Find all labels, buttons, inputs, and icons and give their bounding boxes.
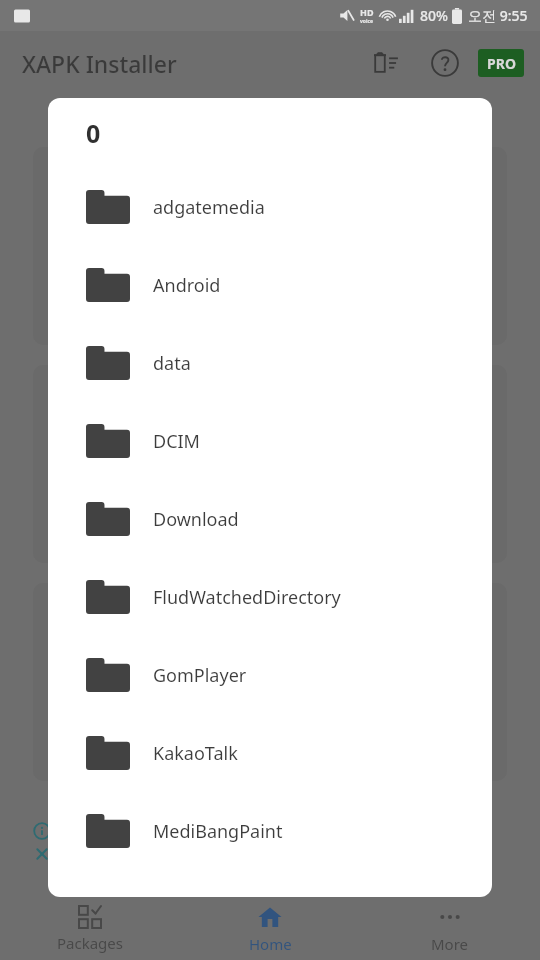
staticText: Android [153, 273, 221, 298]
staticText: Download [153, 507, 239, 532]
staticText: XAPK Installer [22, 48, 177, 79]
staticText: 0 [86, 116, 101, 150]
button[interactable]: DCIM [48, 402, 492, 480]
staticText: FludWatchedDirectory [153, 585, 341, 610]
staticText: PRO [487, 54, 516, 73]
button[interactable]: FludWatchedDirectory [48, 558, 492, 636]
button[interactable]: KakaoTalk [48, 714, 492, 792]
staticText: GomPlayer [153, 663, 247, 688]
button[interactable] [33, 583, 507, 781]
button[interactable] [33, 365, 507, 563]
button[interactable]: PRO [478, 49, 524, 77]
staticText: voice [360, 18, 374, 25]
staticText: KakaoTalk [153, 741, 238, 766]
staticText: MediBangPaint [153, 819, 283, 844]
button[interactable]: adgatemedia [48, 168, 492, 246]
button[interactable]: Clear list [364, 40, 410, 86]
button[interactable]: Packages [0, 898, 180, 960]
staticText: adgatemedia [153, 195, 265, 220]
button[interactable]: Home [180, 898, 360, 960]
button[interactable]: Download [48, 480, 492, 558]
button[interactable]: data [48, 324, 492, 402]
staticText: 오전 9:55 [468, 6, 528, 25]
staticText: DCIM [153, 429, 200, 454]
staticText: Packages [57, 933, 123, 953]
button[interactable]: Help [422, 40, 468, 86]
button[interactable]: Android [48, 246, 492, 324]
staticText: More [431, 934, 469, 954]
button[interactable]: MediBangPaint [48, 792, 492, 870]
button[interactable] [33, 147, 507, 345]
button[interactable]: More [360, 898, 540, 960]
staticText: HD [360, 6, 374, 18]
staticText: data [153, 351, 191, 376]
staticText: Home [249, 934, 292, 954]
staticText: 80% [420, 6, 448, 25]
button[interactable]: GomPlayer [48, 636, 492, 714]
